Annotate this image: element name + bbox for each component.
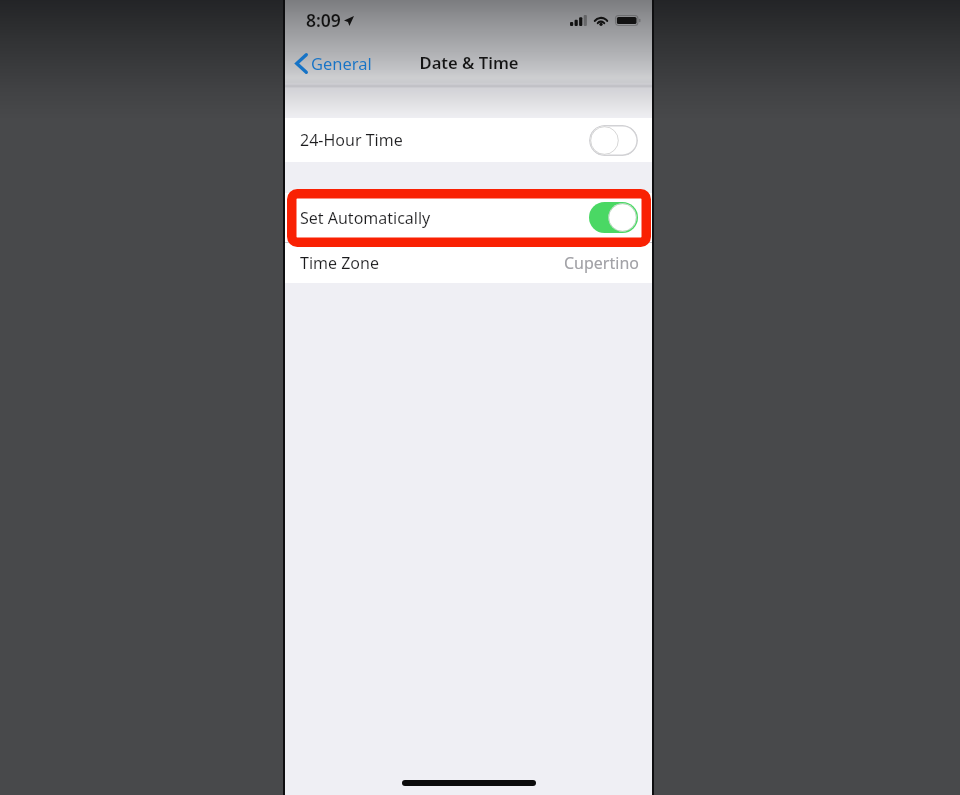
button[interactable]: 24-Hour Time xyxy=(285,118,652,162)
staticText: Time Zone xyxy=(300,252,379,274)
staticText: Date & Time xyxy=(419,51,519,74)
button[interactable]: Set Automatically xyxy=(285,193,652,242)
button[interactable]: Toggle off xyxy=(589,125,638,156)
staticText: General xyxy=(311,52,372,74)
button[interactable]: Time Zone xyxy=(285,243,652,283)
staticText: 8:09 xyxy=(306,8,341,32)
button[interactable]: Back to General xyxy=(293,48,374,78)
staticText: Set Automatically xyxy=(300,207,431,229)
button[interactable]: Toggle on xyxy=(589,202,638,233)
staticText: Cupertino xyxy=(564,252,639,274)
staticText: 24-Hour Time xyxy=(300,129,403,151)
